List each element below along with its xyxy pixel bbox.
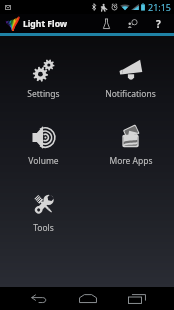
button[interactable]: Tools [0, 180, 87, 247]
staticText: Settings [27, 88, 60, 100]
button[interactable]: Contact support [118, 14, 145, 33]
staticText: ? [156, 17, 161, 31]
button[interactable]: Volume [0, 113, 87, 180]
button[interactable]: Back [14, 287, 63, 310]
staticText: Tools [33, 222, 54, 234]
button[interactable]: Help [145, 14, 172, 33]
button[interactable]: Recent apps [112, 287, 161, 310]
staticText: Light Flow [23, 18, 68, 30]
button[interactable]: Home [63, 287, 112, 310]
staticText: Volume [28, 155, 59, 167]
button[interactable]: Test notifications [91, 14, 118, 33]
staticText: More Apps [109, 155, 153, 167]
staticText: Notifications [105, 88, 156, 100]
button[interactable]: Notifications [87, 46, 174, 113]
button[interactable]: More Apps [87, 113, 174, 180]
staticText: 21:15 [148, 1, 172, 13]
button[interactable]: Settings [0, 46, 87, 113]
